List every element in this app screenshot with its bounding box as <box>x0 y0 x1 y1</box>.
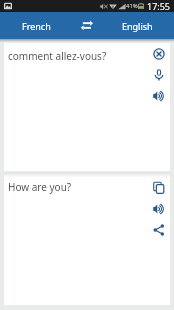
button[interactable]: French <box>0 12 73 39</box>
button[interactable]: Clear <box>148 43 169 64</box>
button[interactable]: Share <box>148 219 169 240</box>
staticText: English <box>122 20 153 32</box>
staticText: 41% <box>126 2 138 10</box>
button[interactable]: Swap languages <box>73 12 100 39</box>
button[interactable]: Listen <box>148 198 169 219</box>
button[interactable]: Voice input <box>148 64 169 85</box>
button[interactable]: Listen <box>148 85 169 106</box>
staticText: How are you? <box>8 180 72 194</box>
staticText: French <box>22 20 51 32</box>
button[interactable]: comment allez-vous? <box>4 43 170 171</box>
button[interactable]: How are you? <box>4 177 170 305</box>
staticText: comment allez-vous? <box>8 49 107 63</box>
button[interactable]: English <box>100 12 174 39</box>
staticText: 17:55 <box>147 0 171 12</box>
button[interactable]: Copy <box>148 177 169 198</box>
